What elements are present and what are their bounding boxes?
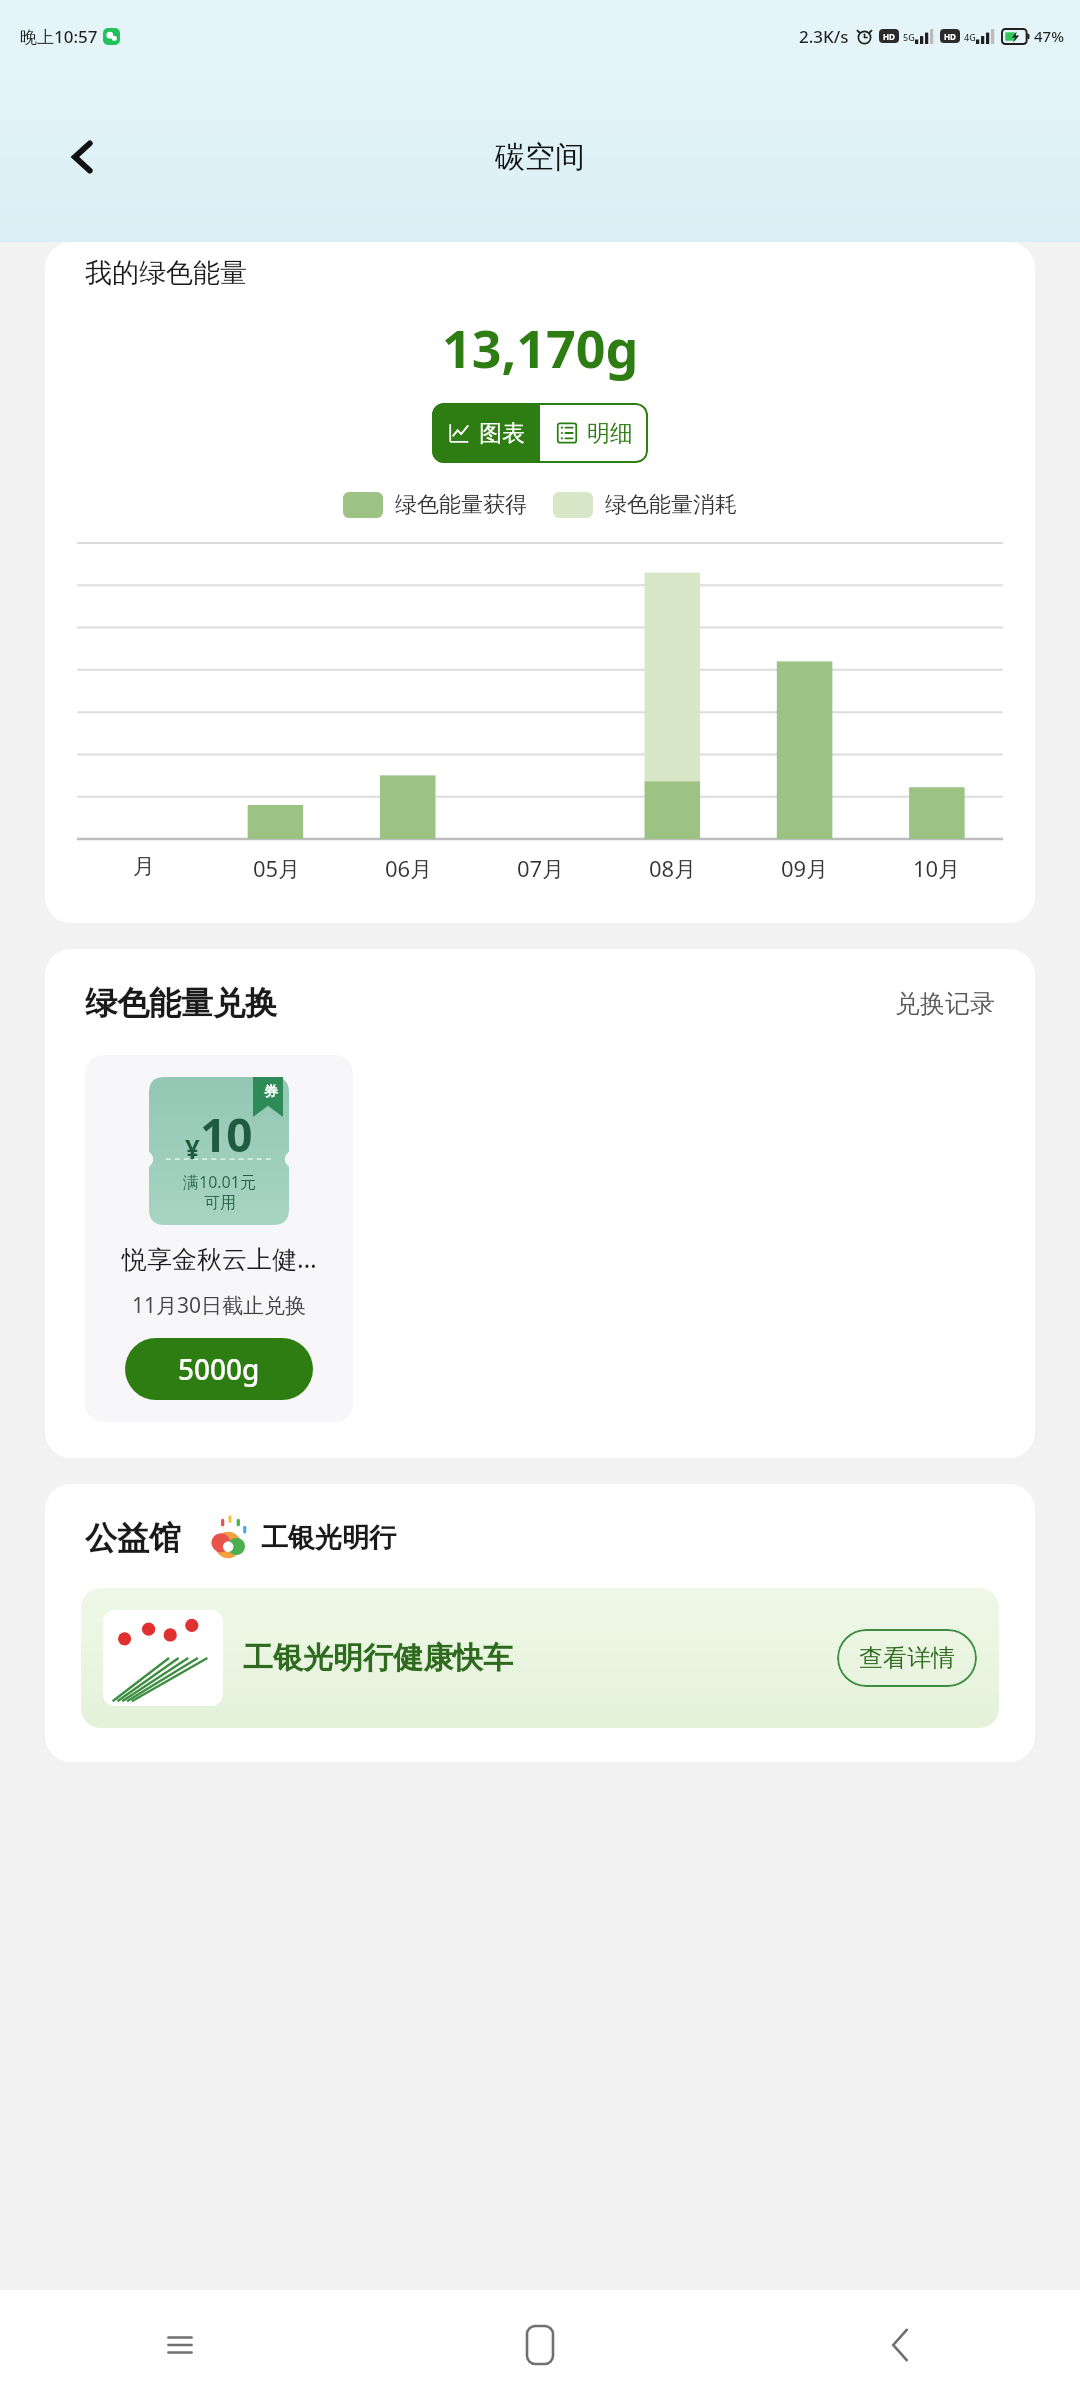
staticText: 兑换记录 — [895, 988, 995, 1019]
staticText: 47% — [1034, 26, 1064, 46]
staticText: 10月 — [913, 853, 961, 883]
button[interactable]: Back — [52, 126, 114, 188]
staticText: 我的绿色能量 — [85, 256, 247, 290]
staticText: 明细 — [587, 419, 633, 448]
staticText: 13,170g — [442, 312, 639, 383]
staticText: 4G — [964, 31, 976, 43]
button[interactable]: Back — [720, 2290, 1080, 2400]
staticText: 券 — [264, 1083, 278, 1101]
staticText: 绿色能量获得 — [395, 491, 527, 519]
staticText: 11月30日截止兑换 — [132, 1291, 307, 1320]
staticText: 09月 — [781, 853, 829, 883]
staticText: 悦享金秋云上健… — [122, 1241, 317, 1275]
staticText: HD — [883, 31, 895, 42]
staticText: 晚上10:57 — [20, 25, 98, 48]
button[interactable]: Home — [360, 2290, 720, 2400]
staticText: 满10.01元 — [183, 1171, 256, 1193]
staticText: 工银光明行 — [261, 1521, 396, 1555]
staticText: 绿色能量兑换 — [85, 983, 277, 1023]
button[interactable]: 查看详情 — [837, 1629, 977, 1687]
staticText: 公益馆 — [85, 1518, 181, 1558]
staticText: 可用 — [204, 1193, 236, 1213]
staticText: 5000g — [178, 1350, 260, 1388]
button[interactable]: 图表 — [432, 403, 540, 463]
staticText: 08月 — [649, 853, 697, 883]
staticText: 图表 — [479, 419, 525, 448]
staticText: 2.3K/s — [799, 25, 849, 48]
button[interactable]: Recent apps — [0, 2290, 360, 2400]
staticText: HD — [944, 31, 956, 42]
staticText: 绿色能量消耗 — [605, 491, 737, 519]
staticText: 05月 — [253, 853, 301, 883]
staticText: 碳空间 — [495, 138, 585, 176]
staticText: 07月 — [517, 853, 565, 883]
button[interactable]: 兑换记录 — [895, 988, 995, 1019]
button[interactable]: 明细 — [540, 403, 648, 463]
staticText: 工银光明行健康快车 — [243, 1639, 827, 1677]
staticText: 5G — [903, 31, 915, 43]
staticText: 06月 — [385, 853, 433, 883]
button[interactable]: 券 — [85, 1055, 353, 1422]
staticText: 月 — [133, 853, 155, 881]
staticText: 10 — [200, 1103, 253, 1166]
staticText: 查看详情 — [859, 1643, 955, 1673]
button[interactable]: 工银光明行健康快车 — [81, 1588, 999, 1728]
button[interactable]: 5000g — [125, 1338, 313, 1400]
staticText: ¥ — [185, 1131, 200, 1166]
